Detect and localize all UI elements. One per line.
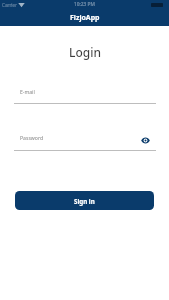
button[interactable]: Password <box>14 132 156 150</box>
staticText: Carrier <box>2 2 17 8</box>
button[interactable]: E-mail <box>14 86 156 103</box>
staticText: Login <box>69 44 101 60</box>
button[interactable]: Toggle password visibility <box>138 133 152 147</box>
staticText: Sign in <box>74 197 95 205</box>
staticText: FizjoApp <box>70 13 100 23</box>
staticText: E-mail <box>20 89 35 96</box>
staticText: 10:23 PM <box>74 1 95 8</box>
button[interactable]: Sign in <box>15 191 154 210</box>
staticText: Password <box>20 135 44 142</box>
